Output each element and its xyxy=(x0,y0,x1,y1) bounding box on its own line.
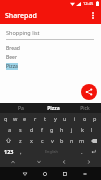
staticText: Bread xyxy=(6,45,20,52)
button[interactable]: Space xyxy=(25,146,77,157)
button[interactable]: i xyxy=(70,113,80,124)
button[interactable]: Right xyxy=(76,157,101,167)
staticText: Beer xyxy=(6,54,17,61)
button[interactable]: o xyxy=(80,113,90,124)
button[interactable]: x xyxy=(26,135,37,146)
staticText: m xyxy=(79,137,85,144)
staticText: d xyxy=(30,126,34,133)
button[interactable]: v xyxy=(47,135,57,146)
staticText: s xyxy=(19,126,22,133)
button[interactable]: Up xyxy=(0,157,26,167)
button[interactable]: Switch keyboard xyxy=(75,167,95,180)
button[interactable]: Recents xyxy=(55,167,75,180)
staticText: 12:45 xyxy=(83,1,94,6)
button[interactable]: u xyxy=(60,113,70,124)
staticText: j xyxy=(71,126,73,133)
button[interactable]: Backspace xyxy=(87,135,100,146)
staticText: English xyxy=(45,149,58,154)
staticText: z xyxy=(19,137,22,144)
button[interactable]: c xyxy=(37,135,47,146)
button[interactable]: . xyxy=(77,146,86,157)
button[interactable]: y xyxy=(50,113,60,124)
staticText: Pick xyxy=(80,105,90,112)
staticText: n xyxy=(70,137,74,144)
staticText: i xyxy=(74,115,76,122)
staticText: e xyxy=(23,115,27,122)
staticText: o xyxy=(83,115,87,122)
staticText: 123 xyxy=(4,148,14,155)
staticText: t xyxy=(44,115,46,122)
button[interactable]: Pick xyxy=(69,103,101,113)
button[interactable]: More options xyxy=(86,9,99,22)
button[interactable]: Shift xyxy=(1,135,15,146)
staticText: Sharepad xyxy=(5,11,37,21)
button[interactable]: w xyxy=(10,113,20,124)
staticText: w xyxy=(13,115,18,122)
button[interactable]: k xyxy=(77,124,87,135)
button[interactable]: Pizza xyxy=(37,103,69,113)
staticText: g xyxy=(50,126,54,133)
button[interactable]: Share xyxy=(81,84,97,100)
button[interactable]: j xyxy=(67,124,77,135)
button[interactable]: Back xyxy=(15,167,35,180)
staticText: Pizza xyxy=(6,63,18,70)
button[interactable]: a xyxy=(4,124,15,135)
staticText: l xyxy=(91,126,93,133)
button[interactable]: n xyxy=(67,135,77,146)
staticText: f xyxy=(41,126,43,133)
button[interactable]: Home xyxy=(35,167,55,180)
button[interactable]: l xyxy=(87,124,97,135)
staticText: u xyxy=(63,115,67,122)
button[interactable]: Down xyxy=(26,157,51,167)
button[interactable]: z xyxy=(15,135,26,146)
staticText: h xyxy=(60,126,64,133)
staticText: a xyxy=(8,126,12,133)
button[interactable]: 123 xyxy=(1,146,16,157)
staticText: p xyxy=(93,115,97,122)
button[interactable]: s xyxy=(15,124,26,135)
staticText: v xyxy=(51,137,54,144)
staticText: , xyxy=(20,148,22,156)
staticText: q xyxy=(4,115,8,122)
staticText: Pizza xyxy=(47,105,60,112)
staticText: r xyxy=(34,115,37,122)
staticText: . xyxy=(81,148,83,156)
staticText: k xyxy=(81,126,84,133)
staticText: Pa xyxy=(18,105,24,112)
button[interactable]: f xyxy=(37,124,47,135)
button[interactable]: q xyxy=(1,113,10,124)
button[interactable]: Enter xyxy=(86,146,100,157)
staticText: Shopping list xyxy=(6,29,40,36)
staticText: c xyxy=(41,137,44,144)
button[interactable]: , xyxy=(16,146,25,157)
button[interactable]: h xyxy=(57,124,67,135)
staticText: x xyxy=(30,137,33,144)
button[interactable]: g xyxy=(47,124,57,135)
button[interactable]: d xyxy=(26,124,37,135)
button[interactable]: Pa xyxy=(5,103,37,113)
staticText: y xyxy=(54,115,57,122)
button[interactable]: p xyxy=(90,113,100,124)
button[interactable]: m xyxy=(77,135,87,146)
button[interactable]: r xyxy=(30,113,40,124)
staticText: b xyxy=(60,137,64,144)
button[interactable]: Left xyxy=(51,157,76,167)
button[interactable]: e xyxy=(20,113,30,124)
button[interactable]: t xyxy=(40,113,50,124)
button[interactable]: b xyxy=(57,135,67,146)
